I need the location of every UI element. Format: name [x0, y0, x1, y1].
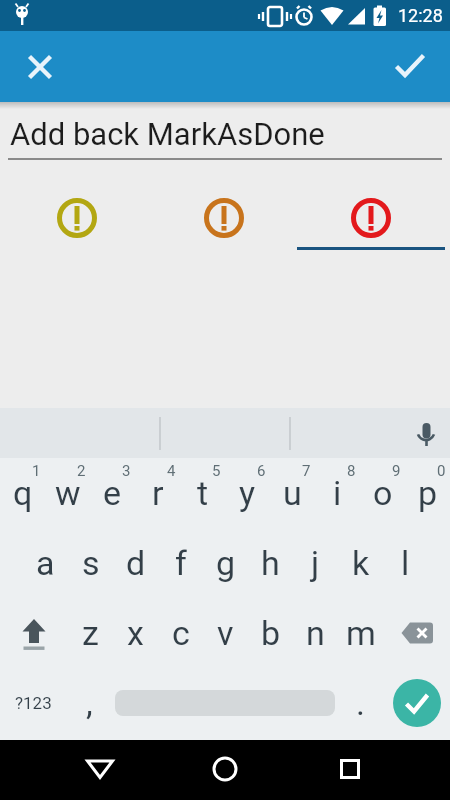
staticText: 8: [347, 462, 356, 480]
button[interactable]: c: [158, 598, 203, 668]
staticText: 3: [122, 462, 131, 480]
staticText: 6: [257, 462, 266, 480]
staticText: c: [172, 613, 190, 653]
button[interactable]: [386, 43, 434, 91]
staticText: e: [103, 473, 122, 513]
button[interactable]: s: [68, 528, 113, 598]
staticText: a: [36, 543, 55, 583]
staticText: .: [356, 683, 365, 723]
button[interactable]: q: [0, 458, 45, 528]
staticText: 9: [392, 462, 401, 480]
button[interactable]: [16, 43, 64, 91]
staticText: p: [418, 473, 438, 513]
button[interactable]: [76, 745, 124, 793]
button[interactable]: ?123: [0, 668, 67, 738]
staticText: g: [216, 543, 236, 583]
button[interactable]: o: [360, 458, 405, 528]
button[interactable]: p: [405, 458, 450, 528]
staticText: i: [333, 473, 342, 513]
button[interactable]: m: [338, 598, 383, 668]
staticText: 5: [212, 462, 221, 480]
staticText: 0: [437, 462, 446, 480]
staticText: w: [55, 473, 81, 513]
button[interactable]: a: [23, 528, 68, 598]
button[interactable]: [326, 745, 374, 793]
button[interactable]: w: [45, 458, 90, 528]
staticText: o: [373, 473, 393, 513]
staticText: 1: [32, 462, 41, 480]
staticText: b: [261, 613, 281, 653]
staticText: x: [127, 613, 144, 653]
button[interactable]: v: [203, 598, 248, 668]
staticText: k: [352, 543, 370, 583]
staticText: r: [152, 473, 164, 513]
button[interactable]: [402, 409, 450, 457]
staticText: 2: [77, 462, 86, 480]
button[interactable]: j: [293, 528, 338, 598]
button[interactable]: f: [158, 528, 203, 598]
button[interactable]: d: [113, 528, 158, 598]
staticText: s: [82, 543, 100, 583]
staticText: Add back MarkAsDone: [10, 116, 325, 152]
button[interactable]: h: [248, 528, 293, 598]
button[interactable]: [383, 668, 450, 738]
button[interactable]: l: [383, 528, 428, 598]
button[interactable]: [201, 745, 249, 793]
button[interactable]: [0, 598, 67, 668]
staticText: q: [13, 473, 33, 513]
button[interactable]: [112, 668, 338, 738]
staticText: ,: [86, 683, 93, 723]
staticText: v: [217, 613, 234, 653]
staticText: 7: [302, 462, 311, 480]
button[interactable]: n: [293, 598, 338, 668]
button[interactable]: k: [338, 528, 383, 598]
button[interactable]: y: [225, 458, 270, 528]
staticText: m: [346, 613, 376, 653]
staticText: n: [306, 613, 325, 653]
staticText: t: [197, 473, 209, 513]
staticText: l: [401, 543, 410, 583]
button[interactable]: .: [338, 668, 383, 738]
staticText: z: [82, 613, 99, 653]
button[interactable]: g: [203, 528, 248, 598]
staticText: 12:28: [398, 5, 443, 26]
button[interactable]: e: [90, 458, 135, 528]
staticText: u: [283, 473, 302, 513]
button[interactable]: r: [135, 458, 180, 528]
button[interactable]: b: [248, 598, 293, 668]
button[interactable]: [53, 194, 101, 242]
button[interactable]: [383, 598, 450, 668]
button[interactable]: [347, 194, 395, 242]
staticText: f: [175, 543, 187, 583]
button[interactable]: u: [270, 458, 315, 528]
staticText: j: [311, 543, 320, 583]
staticText: h: [261, 543, 280, 583]
staticText: y: [239, 473, 256, 513]
staticText: 4: [167, 462, 176, 480]
button[interactable]: i: [315, 458, 360, 528]
button[interactable]: [200, 194, 248, 242]
staticText: ?123: [15, 693, 52, 713]
button[interactable]: x: [113, 598, 158, 668]
button[interactable]: ,: [67, 668, 112, 738]
button[interactable]: z: [68, 598, 113, 668]
button[interactable]: t: [180, 458, 225, 528]
staticText: d: [126, 543, 146, 583]
